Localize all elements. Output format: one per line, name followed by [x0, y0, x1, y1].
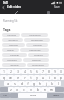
button[interactable]: s	[11, 81, 18, 86]
staticText: motivation	[29, 34, 41, 37]
staticText: Tags	[3, 27, 11, 31]
button[interactable]: healthylife	[20, 48, 49, 52]
button[interactable]: 0	[58, 69, 64, 74]
button[interactable]: z	[8, 87, 14, 92]
staticText: x	[16, 88, 18, 92]
staticText: running	[7, 34, 16, 37]
button[interactable]: morning	[2, 58, 22, 62]
button[interactable]: p	[58, 75, 64, 80]
staticText: space	[30, 94, 36, 97]
staticText: j	[46, 82, 47, 86]
button[interactable]: i	[46, 75, 52, 80]
button[interactable]: cardiofit	[2, 53, 27, 57]
staticText: return	[53, 94, 59, 97]
button[interactable]: Save	[54, 5, 60, 9]
button[interactable]: u	[40, 75, 46, 80]
button[interactable]: health	[2, 48, 19, 52]
staticText: exercise	[9, 44, 18, 47]
staticText: v	[30, 88, 32, 92]
button[interactable]: t	[28, 75, 34, 80]
button[interactable]: Crop	[47, 11, 50, 14]
staticText: morning	[7, 59, 17, 62]
button[interactable]: n	[41, 87, 48, 92]
staticText: workout	[8, 39, 18, 42]
staticText: g	[33, 82, 35, 86]
button[interactable]: y	[34, 75, 40, 80]
staticText: i	[49, 76, 50, 80]
staticText: lifestyle	[10, 64, 19, 67]
staticText: Edit video	[7, 5, 22, 9]
staticText: z	[10, 88, 12, 92]
staticText: fitnessgoal	[31, 39, 43, 42]
button[interactable]: k	[49, 81, 55, 86]
button[interactable]: v	[27, 87, 34, 92]
button[interactable]: 7	[40, 69, 46, 74]
button[interactable]: endurance	[27, 63, 49, 67]
button[interactable]: w	[7, 75, 14, 80]
button[interactable]: g	[31, 81, 37, 86]
staticText: e	[17, 76, 19, 80]
button[interactable]: fitnessgoal	[24, 38, 50, 42]
button[interactable]: training	[26, 43, 48, 47]
staticText: c	[23, 88, 25, 92]
staticText: f	[27, 82, 29, 86]
button[interactable]: Edit	[14, 10, 18, 14]
staticText: 6	[36, 70, 38, 74]
button[interactable]: 6	[34, 69, 40, 74]
button[interactable]: l	[55, 81, 61, 86]
button[interactable]: return	[47, 93, 64, 98]
button[interactable]: dailyrun	[23, 58, 49, 62]
button[interactable]: space	[18, 93, 47, 98]
staticText: health	[7, 49, 14, 52]
staticText: o	[54, 76, 56, 80]
staticText: 8	[48, 70, 50, 74]
button[interactable]: 1	[0, 69, 7, 74]
button[interactable]: m	[48, 87, 55, 92]
staticText: l	[58, 82, 59, 86]
button[interactable]: exercise	[2, 43, 25, 47]
button[interactable]: c	[20, 87, 27, 92]
button[interactable]: a	[4, 81, 11, 86]
button[interactable]: running	[2, 33, 20, 37]
button[interactable]: q	[0, 75, 7, 80]
button[interactable]: workout	[2, 38, 23, 42]
button[interactable]: 3	[14, 69, 21, 74]
staticText: p	[60, 76, 62, 80]
button[interactable]: lifestyle	[2, 63, 26, 67]
button[interactable]: x	[14, 87, 20, 92]
button[interactable]: 9	[52, 69, 58, 74]
staticText: q	[3, 76, 5, 80]
staticText: 5	[30, 70, 32, 74]
staticText: m	[50, 88, 53, 92]
button[interactable]: outdoor	[28, 53, 49, 57]
button[interactable]: 8	[46, 69, 52, 74]
button[interactable]: 5	[28, 69, 34, 74]
button[interactable]: 2	[7, 69, 14, 74]
button[interactable]: 123	[0, 93, 10, 98]
button[interactable]: d	[18, 81, 25, 86]
staticText: 0	[60, 70, 62, 74]
staticText: outdoor	[34, 54, 43, 57]
staticText: 1	[3, 70, 5, 74]
button[interactable]: o	[52, 75, 58, 80]
button[interactable]: e	[14, 75, 21, 80]
button[interactable]: Back	[0, 4, 7, 10]
staticText: n	[44, 88, 46, 92]
staticText: 9:41	[3, 1, 8, 4]
button[interactable]: r	[21, 75, 28, 80]
staticText: 4	[24, 70, 26, 74]
staticText: y	[36, 76, 38, 80]
button[interactable]: 4	[21, 69, 28, 74]
staticText: healthylife	[29, 49, 41, 52]
staticText: 123	[3, 94, 7, 97]
button[interactable]: b	[34, 87, 41, 92]
button[interactable]: f	[25, 81, 31, 86]
button[interactable]: j	[43, 81, 49, 86]
staticText: 2	[10, 70, 12, 74]
button[interactable]: h	[37, 81, 43, 86]
staticText: k	[51, 82, 53, 86]
button[interactable]: motivation	[21, 33, 48, 37]
